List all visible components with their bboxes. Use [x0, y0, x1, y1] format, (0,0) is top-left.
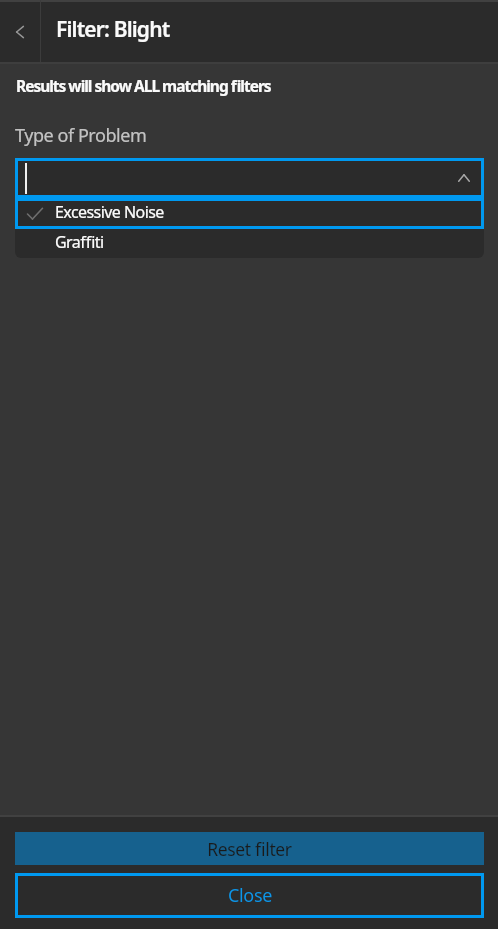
button[interactable]: Excessive Noise	[15, 198, 484, 229]
button[interactable]: Reset filter	[15, 832, 484, 865]
staticText: Reset filter	[207, 837, 292, 861]
staticText: Graffiti	[55, 231, 104, 253]
button[interactable]: Close	[15, 873, 484, 918]
staticText: Results will show ALL matching filters	[16, 75, 271, 96]
button[interactable]: Back	[0, 0, 40, 62]
staticText: Type of Problem	[15, 123, 147, 148]
staticText: Filter: Blight	[56, 15, 170, 44]
staticText: Excessive Noise	[55, 201, 164, 223]
button[interactable]	[15, 158, 484, 198]
staticText: Close	[228, 883, 272, 908]
button[interactable]: Graffiti	[15, 229, 484, 258]
